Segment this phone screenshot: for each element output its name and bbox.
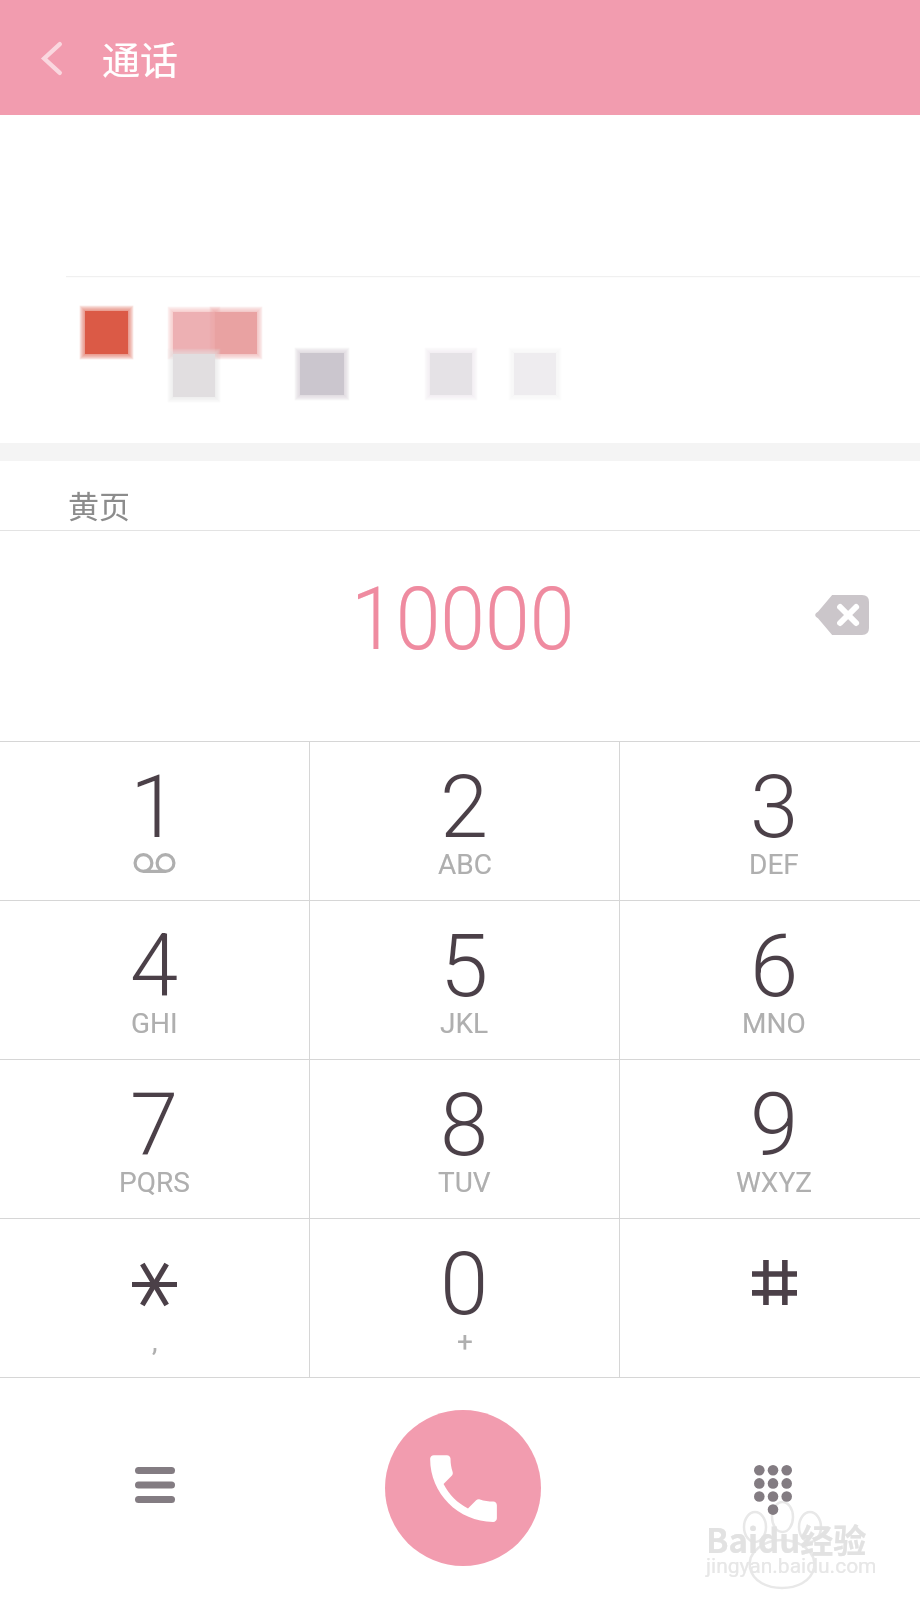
staticText: jingyan.baidu.com: [706, 1554, 877, 1579]
staticText: 1: [130, 756, 179, 858]
staticText: 8: [440, 1074, 489, 1176]
button[interactable]: * ,: [0, 1219, 309, 1377]
button[interactable]: 1 voicemail: [0, 742, 309, 900]
button[interactable]: 6 MNO: [620, 901, 920, 1059]
staticText: PQRS: [119, 1166, 190, 1196]
staticText: 4: [130, 915, 179, 1017]
staticText: 6: [750, 915, 799, 1017]
button[interactable]: 8 TUV: [310, 1060, 619, 1218]
button[interactable]: Back: [22, 28, 82, 88]
staticText: 黄页: [68, 482, 130, 527]
staticText: 9: [750, 1074, 799, 1176]
button[interactable]: 7 PQRS: [0, 1060, 309, 1218]
button[interactable]: Backspace: [794, 567, 889, 662]
button[interactable]: 0 +: [310, 1219, 619, 1377]
staticText: 通话: [102, 30, 179, 85]
staticText: 7: [130, 1074, 179, 1176]
button[interactable]: Call log: [100, 1430, 210, 1540]
staticText: MNO: [742, 1007, 806, 1037]
button[interactable]: 5 JKL: [310, 901, 619, 1059]
staticText: GHI: [131, 1007, 178, 1037]
staticText: TUV: [438, 1166, 491, 1196]
button[interactable]: #: [620, 1219, 920, 1377]
staticText: WXYZ: [736, 1166, 812, 1196]
staticText: 3: [750, 756, 799, 858]
button[interactable]: 9 WXYZ: [620, 1060, 920, 1218]
button[interactable]: 3 DEF: [620, 742, 920, 900]
staticText: ,: [152, 1325, 158, 1355]
button[interactable]: 2 ABC: [310, 742, 619, 900]
staticText: ABC: [438, 848, 492, 878]
staticText: 0: [440, 1233, 489, 1335]
button[interactable]: Keypad: [718, 1435, 828, 1545]
staticText: Baidu经验: [706, 1515, 867, 1563]
button[interactable]: Call: [385, 1410, 541, 1566]
button[interactable]: 黄页: [0, 461, 920, 531]
staticText: +: [457, 1325, 473, 1355]
staticText: 5: [440, 915, 489, 1017]
button[interactable]: 4 GHI: [0, 901, 309, 1059]
staticText: DEF: [749, 848, 799, 878]
staticText: 2: [440, 756, 489, 858]
staticText: 10000: [351, 568, 575, 670]
staticText: JKL: [440, 1007, 489, 1037]
